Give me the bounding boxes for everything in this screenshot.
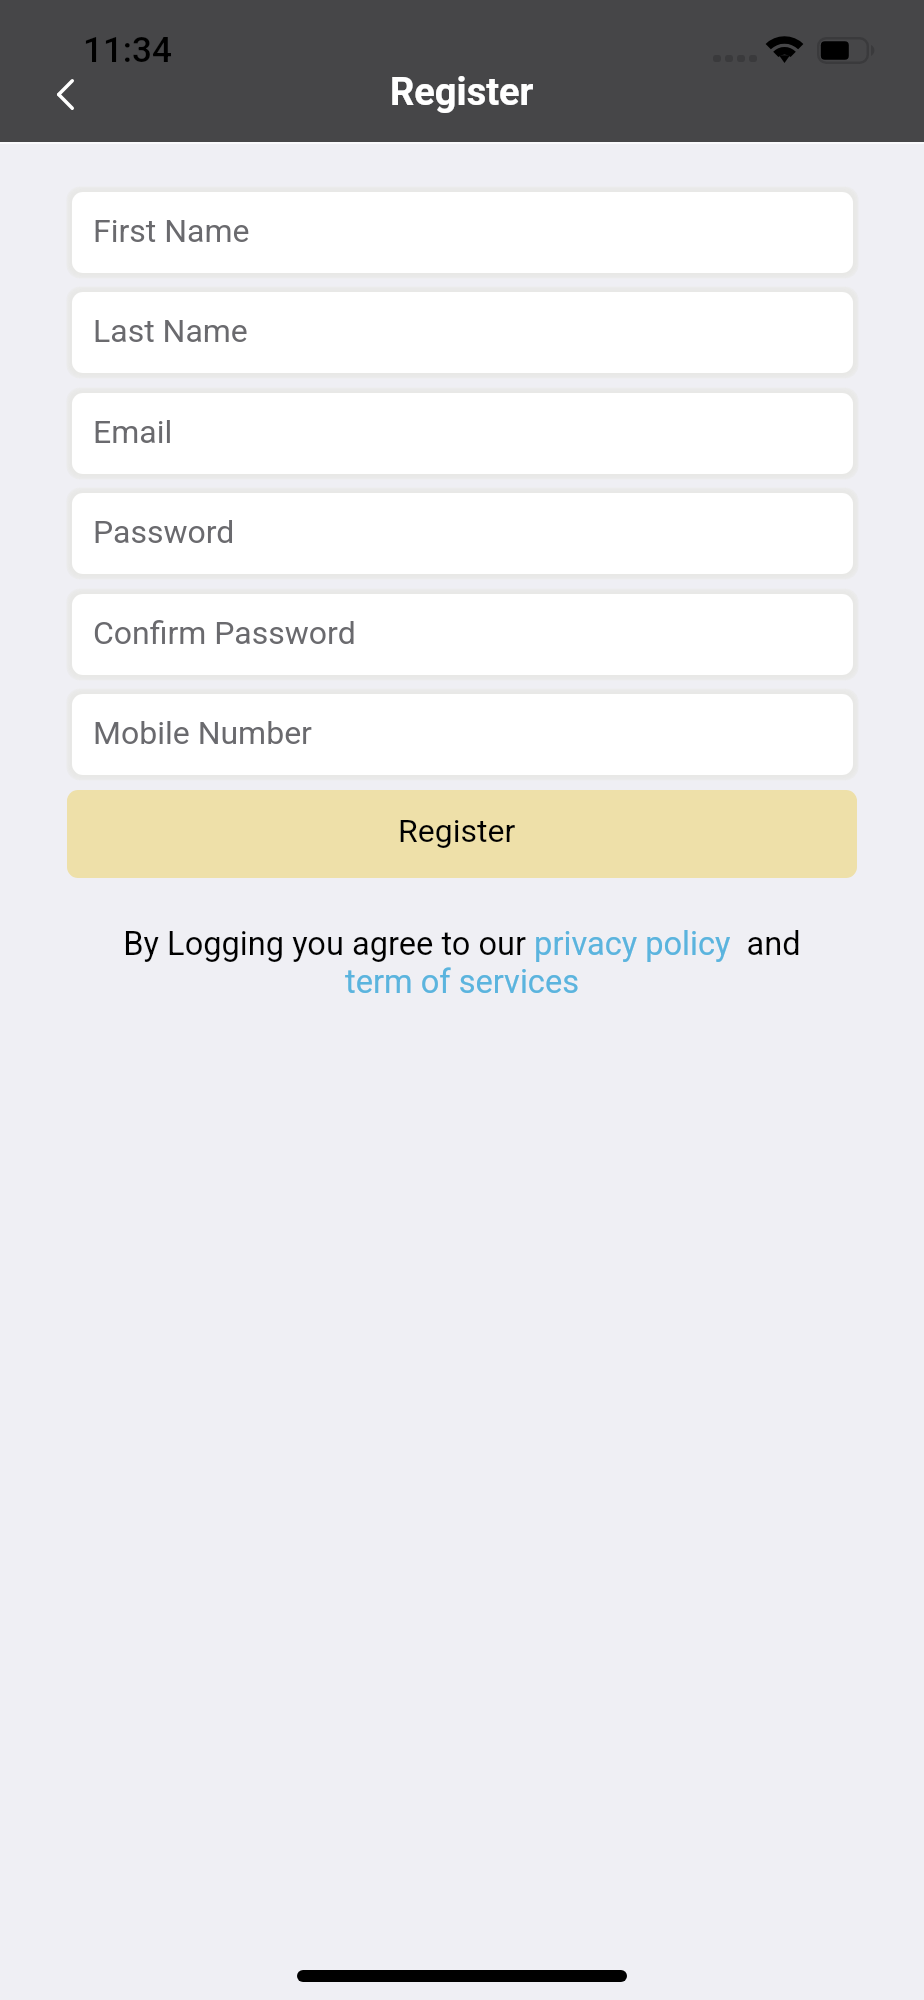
button[interactable]: Back — [33, 62, 97, 126]
staticText: Confirm Password — [93, 614, 356, 652]
staticText: Email — [93, 413, 173, 451]
staticText: By Logging you agree to our privacy poli… — [0, 925, 924, 963]
staticText: Password — [93, 513, 235, 551]
staticText: First Name — [93, 212, 250, 250]
staticText: Mobile Number — [93, 714, 312, 752]
button[interactable]: Confirm Password — [72, 594, 853, 675]
staticText: Register — [390, 70, 534, 115]
button[interactable]: Password — [72, 493, 853, 574]
staticText: term of services — [0, 963, 924, 1001]
button[interactable]: By Logging you agree to our privacy poli… — [0, 925, 924, 1001]
button[interactable]: Mobile Number — [72, 694, 853, 775]
staticText: Register — [398, 812, 516, 850]
button[interactable]: First Name — [72, 192, 853, 273]
staticText: Last Name — [93, 312, 248, 350]
button[interactable]: Email — [72, 393, 853, 474]
button[interactable]: Register — [67, 790, 857, 878]
staticText: 11:34 — [83, 30, 172, 71]
button[interactable]: Last Name — [72, 292, 853, 373]
